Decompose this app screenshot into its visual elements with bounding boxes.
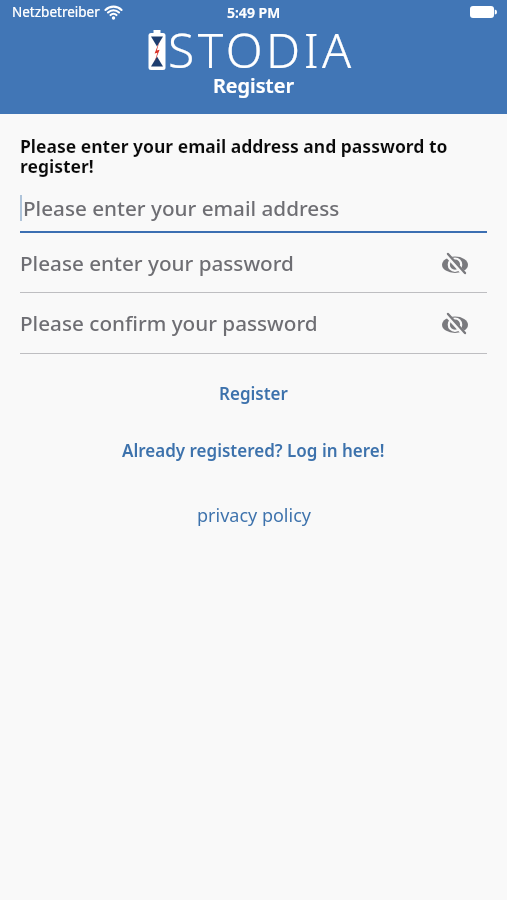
button[interactable]: Please enter your password (20, 233, 487, 293)
staticText: Please enter your email address and pass… (20, 134, 448, 179)
button[interactable]: privacy policy (197, 503, 311, 528)
staticText: Please confirm your password (20, 309, 318, 337)
staticText: 5:49 PM (227, 3, 281, 22)
staticText: Netzbetreiber (12, 3, 100, 21)
button[interactable]: Already registered? Log in here! (122, 439, 385, 462)
staticText: Register (219, 382, 288, 405)
staticText: privacy policy (197, 503, 311, 528)
button[interactable]: Please enter your email address (20, 184, 487, 233)
button[interactable]: Register (219, 382, 288, 405)
staticText: Please enter your email address (23, 194, 340, 222)
staticText: Already registered? Log in here! (122, 439, 385, 462)
staticText: STODIA (168, 17, 355, 82)
staticText: Please enter your password (20, 249, 294, 277)
button[interactable]: Please confirm your password (20, 293, 487, 354)
staticText: Register (213, 72, 295, 99)
